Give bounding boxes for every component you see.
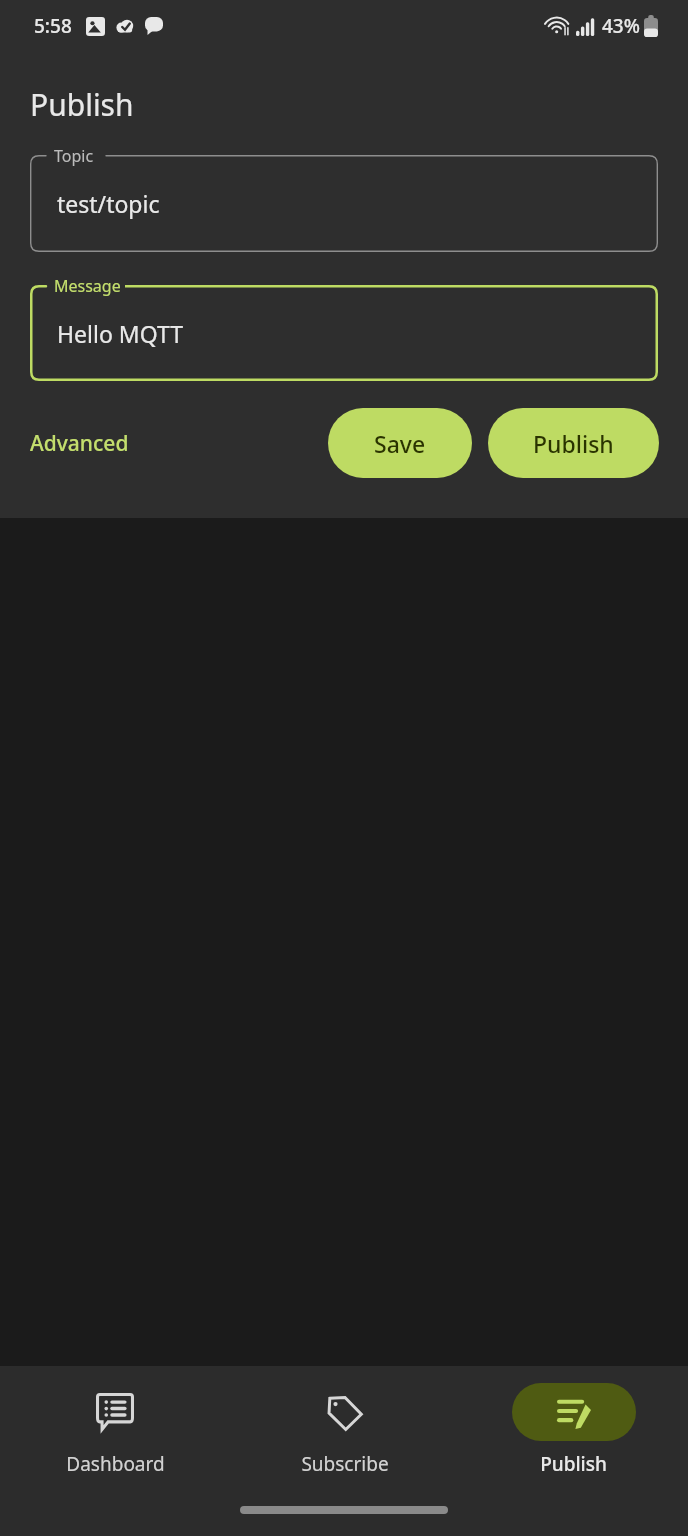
- staticText: test/topic: [57, 188, 160, 219]
- button[interactable]: Publish: [459, 1366, 688, 1494]
- staticText: Subscribe: [301, 1451, 389, 1477]
- staticText: Message: [54, 275, 121, 297]
- button[interactable]: Message: [30, 285, 658, 381]
- staticText: Dashboard: [66, 1451, 165, 1477]
- button[interactable]: Advanced: [22, 419, 137, 468]
- staticText: Hello MQTT: [57, 318, 183, 349]
- staticText: Save: [374, 428, 426, 459]
- staticText: Advanced: [30, 429, 129, 458]
- staticText: 43%: [602, 13, 640, 39]
- staticText: Publish: [533, 428, 614, 459]
- button[interactable]: Subscribe: [230, 1366, 459, 1494]
- button[interactable]: Topic: [30, 155, 658, 252]
- staticText: Publish: [540, 1451, 607, 1477]
- button[interactable]: Dashboard: [0, 1366, 230, 1494]
- staticText: 5:58: [34, 13, 72, 39]
- staticText: Topic: [54, 145, 94, 167]
- button[interactable]: Publish: [488, 408, 659, 478]
- staticText: Publish: [30, 84, 134, 125]
- button[interactable]: Save: [328, 408, 472, 478]
